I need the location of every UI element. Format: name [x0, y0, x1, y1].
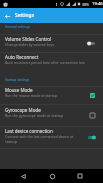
staticText: Run the gyroscope mode at startup [5, 113, 64, 118]
button[interactable]: Toggle [84, 37, 98, 49]
staticText: Connect with the last connected device a… [5, 134, 74, 139]
button[interactable]: Checkbox [86, 109, 98, 121]
button[interactable]: Recent apps [74, 170, 86, 182]
staticText: General settings [5, 25, 30, 29]
staticText: 38% [82, 2, 90, 7]
button[interactable]: Toggle [84, 131, 98, 143]
staticText: 19:46 [92, 1, 103, 7]
button[interactable] [0, 86, 103, 103]
button[interactable]: Back [17, 170, 29, 182]
button[interactable] [0, 34, 103, 51]
button[interactable]: Home [46, 170, 58, 182]
staticText: Change slides by volume keys [5, 42, 54, 47]
button[interactable] [0, 52, 103, 70]
staticText: startup [5, 139, 17, 144]
button[interactable]: Back [2, 11, 12, 21]
staticText: Volume Slides Control [5, 36, 52, 42]
staticText: Gyroscope Mode [5, 107, 41, 113]
button[interactable] [0, 126, 103, 147]
staticText: Startup settings [5, 78, 30, 82]
button[interactable] [0, 104, 103, 125]
button[interactable]: Checkbox [86, 89, 98, 101]
staticText: Settings [15, 12, 35, 19]
staticText: Auto reconnect period time after connect… [5, 60, 85, 65]
staticText: Last device connection [5, 128, 53, 134]
staticText: Auto Reconnect [5, 54, 39, 60]
staticText: Mouse Mode [5, 87, 33, 93]
staticText: Run the mouse mode at startup [5, 93, 58, 98]
